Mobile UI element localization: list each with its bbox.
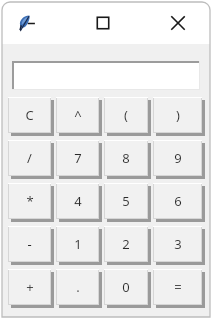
- button[interactable]: 5: [105, 184, 149, 220]
- button[interactable]: C: [9, 98, 52, 134]
- button[interactable]: 1: [57, 227, 100, 263]
- staticText: 6: [174, 192, 182, 210]
- button[interactable]: 9: [154, 141, 203, 177]
- staticText: +: [26, 278, 34, 296]
- button[interactable]: Maximize: [90, 10, 116, 36]
- staticText: 9: [174, 149, 182, 167]
- staticText: 0: [122, 278, 130, 296]
- staticText: 7: [74, 149, 82, 167]
- button[interactable]: 6: [154, 184, 203, 220]
- button[interactable]: .: [57, 270, 100, 306]
- staticText: -: [27, 235, 32, 253]
- staticText: /: [27, 149, 32, 167]
- button[interactable]: ^: [57, 98, 100, 134]
- button[interactable]: (: [105, 98, 149, 134]
- staticText: *: [26, 192, 34, 210]
- button[interactable]: 0: [105, 270, 149, 306]
- button[interactable]: Close: [165, 10, 191, 36]
- staticText: C: [25, 106, 34, 124]
- staticText: 2: [122, 235, 130, 253]
- staticText: 5: [122, 192, 130, 210]
- button[interactable]: 2: [105, 227, 149, 263]
- button[interactable]: ): [154, 98, 203, 134]
- button[interactable]: -: [9, 227, 52, 263]
- button[interactable]: 3: [154, 227, 203, 263]
- staticText: 3: [174, 235, 182, 253]
- staticText: .: [76, 278, 80, 296]
- button[interactable]: =: [154, 270, 203, 306]
- staticText: 4: [74, 192, 82, 210]
- button[interactable]: +: [9, 270, 52, 306]
- staticText: (: [124, 106, 128, 124]
- staticText: ): [176, 106, 180, 124]
- button[interactable]: *: [9, 184, 52, 220]
- staticText: =: [174, 278, 182, 296]
- staticText: 8: [122, 149, 130, 167]
- button[interactable]: 4: [57, 184, 100, 220]
- button[interactable]: [12, 61, 200, 90]
- button[interactable]: 7: [57, 141, 100, 177]
- button[interactable]: /: [9, 141, 52, 177]
- staticText: 1: [74, 235, 82, 253]
- button[interactable]: 8: [105, 141, 149, 177]
- staticText: ^: [74, 106, 82, 124]
